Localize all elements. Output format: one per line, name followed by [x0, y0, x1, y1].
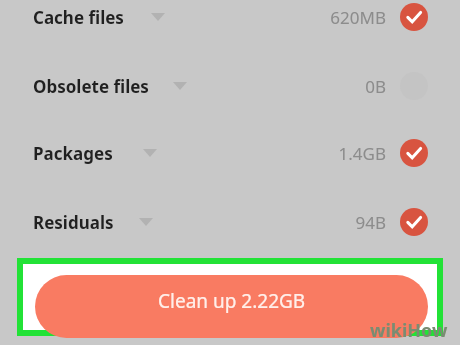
staticText: Clean up 2.22GB — [158, 288, 306, 314]
button[interactable]: Clean up 2.22GB — [35, 275, 428, 338]
button[interactable]: Select Cache files — [398, 1, 430, 33]
button[interactable]: Select Residuals — [398, 206, 430, 238]
staticText: 1.4GB — [338, 142, 386, 165]
staticText: Packages — [33, 142, 113, 165]
button[interactable]: Residuals — [0, 200, 460, 244]
staticText: Residuals — [33, 211, 114, 234]
staticText: Cache files — [33, 6, 124, 29]
button[interactable]: Cache files — [0, 0, 460, 39]
staticText: 94B — [355, 211, 386, 234]
staticText: 620MB — [330, 6, 386, 29]
staticText: wikiHow — [370, 318, 448, 343]
staticText: 0B — [365, 75, 386, 98]
button[interactable]: Select Packages — [398, 137, 430, 169]
button[interactable]: Obsolete files — [0, 64, 460, 108]
staticText: Obsolete files — [33, 75, 149, 98]
button[interactable]: Packages — [0, 131, 460, 175]
